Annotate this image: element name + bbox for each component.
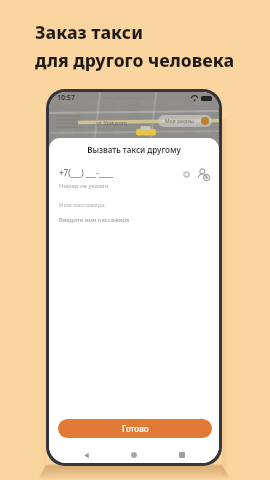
button[interactable]: Clear [181,169,191,179]
staticText: Имя пассажира [59,201,105,209]
staticText: Готово [122,423,149,434]
button[interactable]: Back [81,450,91,460]
button[interactable]: Add contact [196,167,210,181]
staticText: для другого человека [35,48,235,72]
staticText: Введите имя пассажира [59,216,130,224]
staticText: Вызвать такси другому [49,144,219,155]
staticText: Номер не указан [59,182,109,190]
staticText: +7(___) ___-____ [59,167,114,178]
button[interactable]: Мои заказы [165,115,209,127]
staticText: Мои заказы [165,118,194,125]
button[interactable]: Home [129,450,139,460]
button[interactable]: Recents [177,450,187,460]
button[interactable]: Готово [58,419,212,438]
staticText: Заказ такси [35,20,143,44]
staticText: ул. Урицкого [96,120,127,127]
staticText: 10:57 [57,93,75,103]
